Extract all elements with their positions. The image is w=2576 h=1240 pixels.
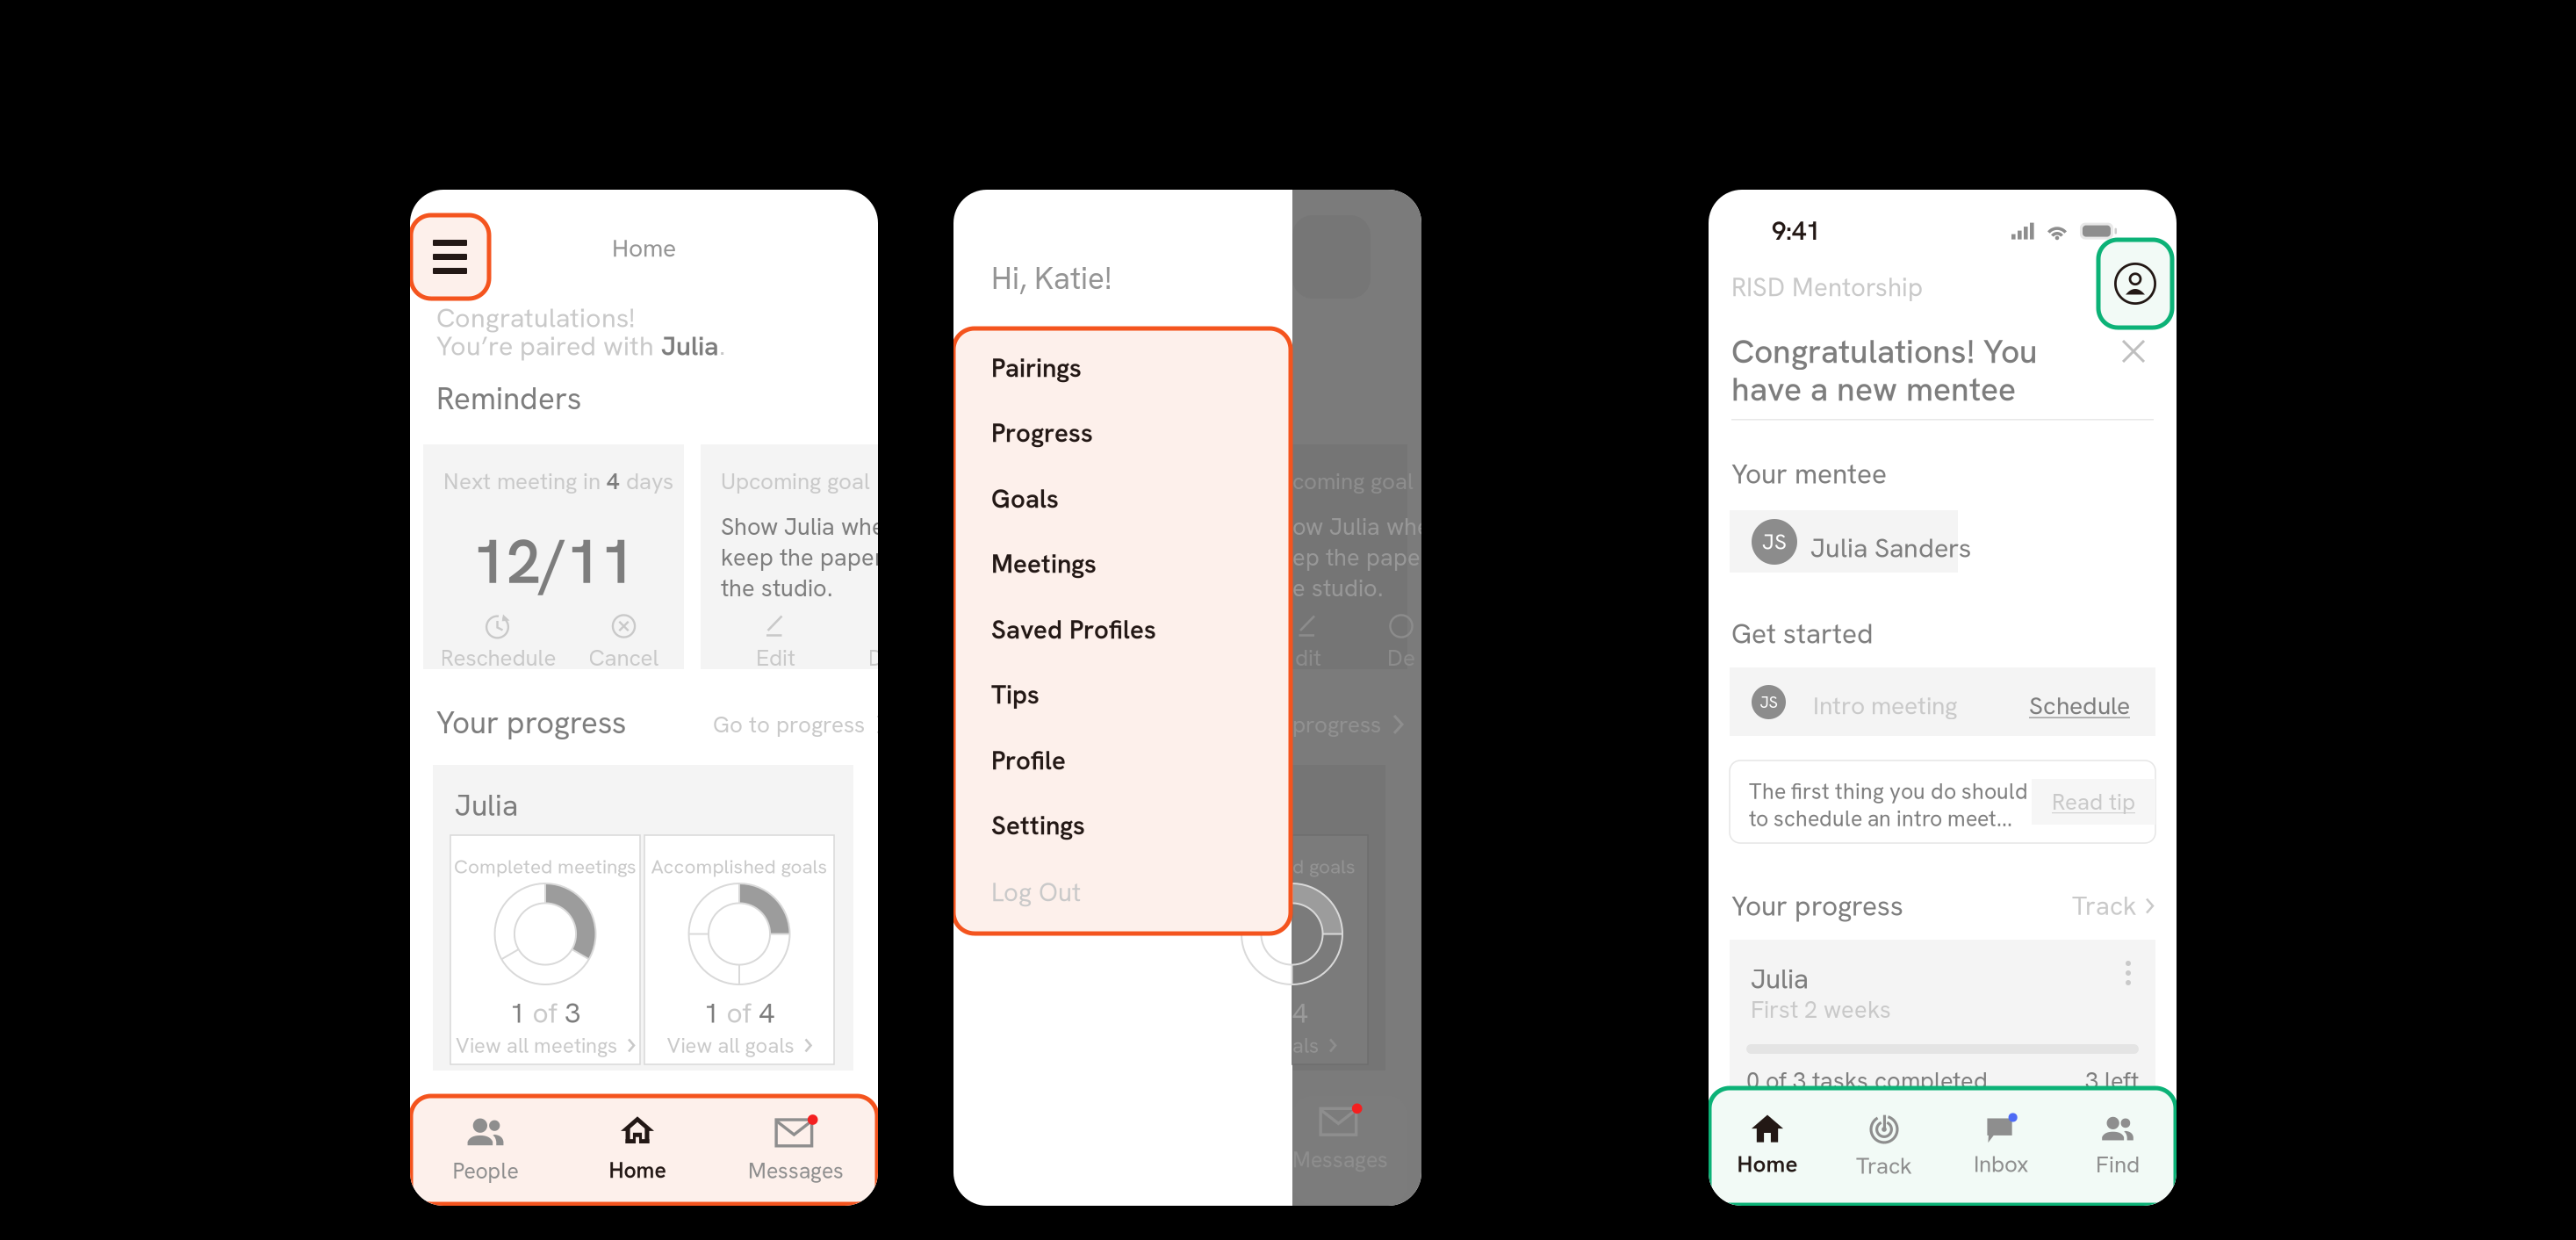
staticText: of — [720, 995, 759, 1031]
staticText: Messages — [748, 1157, 844, 1185]
staticText: Congratulations! — [436, 300, 635, 335]
button[interactable]: Delete — [838, 614, 964, 673]
staticText: Read tip — [2052, 787, 2135, 817]
staticText: 3 left — [2085, 1065, 2139, 1096]
staticText: Home — [1737, 1149, 1798, 1179]
staticText: View all goals — [667, 1032, 794, 1059]
button[interactable]: Profile — [2098, 240, 2172, 328]
staticText: Profile — [991, 744, 1066, 777]
button[interactable]: Find — [2059, 1098, 2176, 1195]
staticText: Edit — [756, 643, 795, 673]
staticText: dit — [1295, 643, 1321, 673]
staticText: 12/11 — [472, 522, 635, 602]
button[interactable]: Completed meetings — [450, 835, 640, 1064]
staticText: the studio. — [721, 573, 832, 603]
staticText: Congratulations! You — [1731, 330, 2038, 373]
staticText: Inbox — [1974, 1149, 2028, 1179]
button[interactable]: Home — [1709, 1098, 1826, 1195]
staticText: Progress — [991, 416, 1093, 450]
staticText: Your mentee — [1731, 456, 1887, 492]
staticText: JS — [1762, 528, 1787, 556]
staticText: RISD Mentorship — [1731, 270, 1923, 304]
button[interactable]: Messages — [715, 1104, 877, 1196]
button[interactable]: Settings — [953, 799, 1291, 852]
button[interactable]: Progress — [953, 407, 1291, 459]
staticText: View all meetings — [456, 1032, 617, 1059]
staticText: Your progress — [436, 703, 626, 743]
staticText: Settings — [991, 809, 1085, 842]
button[interactable]: Accomplished goals — [644, 835, 834, 1064]
button[interactable]: More options — [2119, 959, 2138, 987]
staticText: 9:41 — [1772, 214, 1820, 248]
button[interactable]: People — [411, 1104, 560, 1196]
button[interactable]: Close — [2123, 341, 2144, 362]
staticText: . — [719, 328, 725, 363]
button[interactable]: Pairings — [953, 342, 1291, 394]
staticText: 3 — [565, 995, 581, 1031]
staticText: Log Out — [991, 875, 1081, 909]
staticText: Meetings — [991, 547, 1097, 581]
staticText: Delete — [868, 643, 935, 673]
button[interactable]: Inbox — [1943, 1098, 2059, 1195]
staticText: 4 — [1292, 995, 1308, 1031]
button[interactable]: Edit — [713, 614, 838, 673]
staticText: 1 — [704, 995, 720, 1031]
staticText: The first thing you do should be — [1749, 777, 2058, 806]
staticText: Hi, Katie! — [991, 258, 1112, 298]
staticText: coming goal — [1292, 466, 1414, 496]
staticText: 4 — [759, 995, 775, 1031]
button[interactable]: Tips — [953, 668, 1291, 721]
staticText: Upcoming goal — [721, 466, 870, 496]
staticText: Home — [612, 232, 676, 264]
staticText: Reschedule — [440, 643, 556, 673]
staticText: Julia — [455, 786, 518, 825]
button[interactable]: Home — [560, 1104, 715, 1196]
button[interactable]: Goals — [953, 472, 1291, 525]
staticText: 0 of 3 tasks completed — [1746, 1065, 1988, 1096]
staticText: days — [620, 466, 673, 496]
staticText: Julia Sanders — [1810, 530, 1971, 565]
button[interactable]: Reschedule — [435, 614, 561, 673]
staticText: De — [1387, 643, 1415, 673]
staticText: e studio. — [1292, 573, 1383, 603]
staticText: First 2 weeks — [1751, 994, 1891, 1025]
staticText: Track — [1856, 1151, 1912, 1181]
staticText: People — [453, 1157, 518, 1185]
staticText: Cancel — [589, 643, 659, 673]
staticText: Julia — [661, 328, 719, 363]
staticText: Goals — [991, 482, 1059, 516]
button[interactable]: Track — [1826, 1098, 1943, 1195]
button[interactable]: Meetings — [953, 537, 1291, 590]
button[interactable]: Menu — [411, 215, 489, 299]
staticText: You’re paired with — [436, 328, 661, 363]
staticText: Show Julia where we — [721, 511, 944, 542]
staticText: 4 — [607, 466, 620, 496]
button[interactable]: Cancel — [561, 614, 687, 673]
staticText: Julia — [1751, 961, 1809, 997]
staticText: have a new mentee — [1731, 368, 2016, 410]
button[interactable]: Track — [2072, 889, 2154, 923]
staticText: Home — [609, 1156, 666, 1184]
staticText: progress — [1292, 710, 1381, 739]
staticText: Tips — [991, 678, 1040, 711]
button[interactable]: Profile — [953, 734, 1291, 787]
staticText: to schedule an intro meet... — [1749, 804, 2012, 833]
button[interactable]: Read tip — [2032, 779, 2155, 825]
staticText: ow Julia where — [1292, 511, 1452, 542]
staticText: Completed meetings — [454, 854, 637, 879]
button[interactable]: Log Out — [953, 866, 1291, 919]
staticText: 1 — [510, 995, 525, 1031]
staticText: Your progress — [1731, 888, 1903, 924]
staticText: d goals — [1292, 854, 1356, 879]
staticText: Pairings — [991, 351, 1082, 385]
staticText: JS — [1760, 692, 1777, 713]
button[interactable]: Saved Profiles — [953, 603, 1291, 656]
staticText: Schedule — [2029, 689, 2130, 722]
button[interactable]: Schedule — [2029, 689, 2130, 722]
staticText: Get started — [1731, 616, 1874, 652]
staticText: Go to progress — [713, 710, 865, 739]
staticText: Reminders — [436, 378, 581, 418]
button[interactable]: Go to progress — [713, 710, 887, 739]
staticText: Messages — [1292, 1145, 1388, 1174]
staticText: keep the paper in — [721, 542, 909, 573]
